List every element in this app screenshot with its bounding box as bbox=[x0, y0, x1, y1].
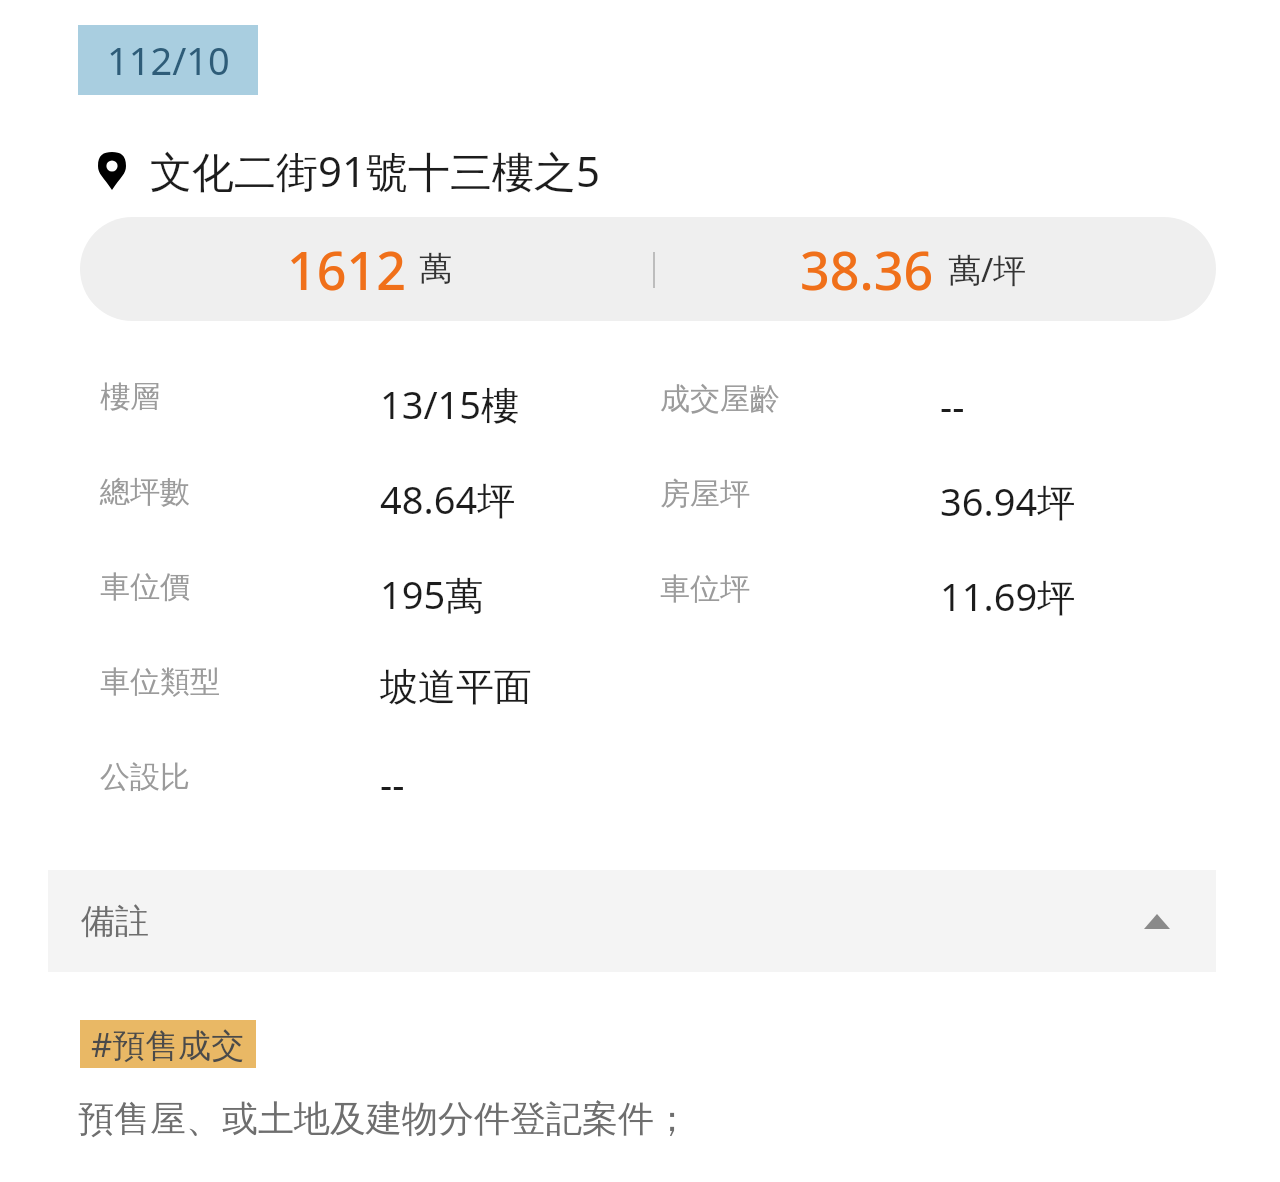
staticText: -- bbox=[940, 380, 965, 432]
button[interactable]: 112/10 bbox=[78, 25, 258, 95]
staticText: 車位類型 bbox=[100, 663, 220, 701]
staticText: 萬 bbox=[419, 248, 452, 290]
staticText: 坡道平面 bbox=[380, 663, 532, 711]
staticText: 112/10 bbox=[107, 34, 230, 86]
button[interactable]: 備註 bbox=[48, 870, 1216, 972]
staticText: 11.69坪 bbox=[940, 570, 1076, 622]
staticText: 13/15樓 bbox=[380, 378, 520, 430]
button[interactable]: 文化二街91號十三樓之5 bbox=[98, 142, 601, 199]
staticText: 房屋坪 bbox=[660, 475, 750, 513]
staticText: 車位價 bbox=[100, 568, 190, 606]
other: Collapse notes bbox=[1144, 914, 1170, 929]
staticText: 備註 bbox=[81, 900, 149, 943]
staticText: -- bbox=[380, 758, 405, 810]
staticText: 公設比 bbox=[100, 758, 190, 796]
staticText: 樓層 bbox=[100, 378, 160, 416]
button[interactable]: 1612 bbox=[80, 217, 1216, 321]
staticText: 成交屋齡 bbox=[660, 380, 780, 418]
staticText: 1612 bbox=[287, 234, 406, 305]
staticText: 車位坪 bbox=[660, 570, 750, 608]
staticText: #預售成交 bbox=[91, 1022, 245, 1067]
staticText: 文化二街91號十三樓之5 bbox=[150, 142, 601, 199]
staticText: 38.36 bbox=[800, 234, 934, 305]
staticText: 36.94坪 bbox=[940, 475, 1076, 527]
staticText: 總坪數 bbox=[100, 473, 190, 511]
staticText: 195萬 bbox=[380, 568, 484, 620]
button[interactable]: #預售成交 bbox=[80, 1020, 256, 1068]
staticText: 萬/坪 bbox=[948, 247, 1027, 292]
staticText: 預售屋、或土地及建物分件登記案件； bbox=[78, 1096, 690, 1141]
staticText: 48.64坪 bbox=[380, 473, 516, 525]
